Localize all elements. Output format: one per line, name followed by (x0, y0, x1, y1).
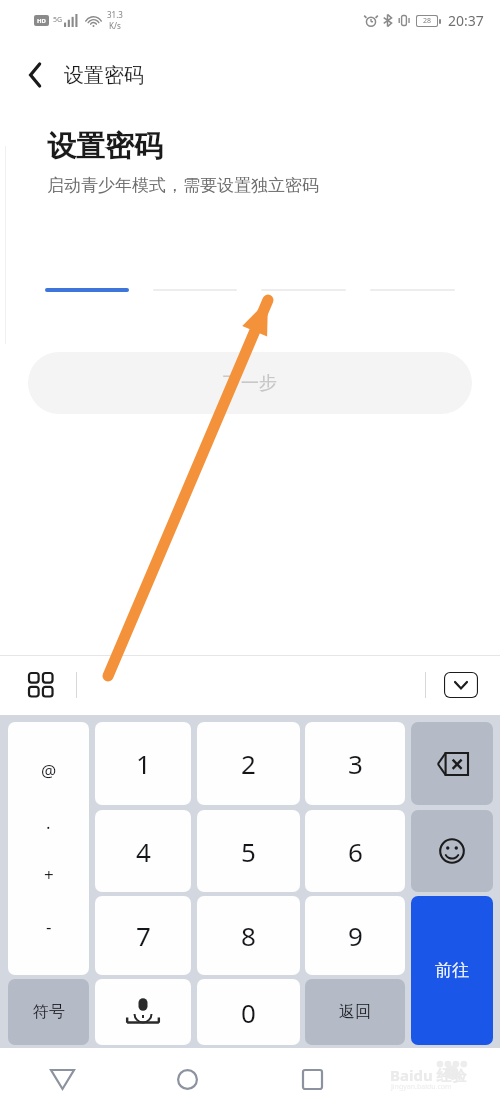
staticText: Baidu 经验 (390, 1065, 467, 1085)
button[interactable]: Home (125, 1048, 250, 1111)
staticText: jingyan.baidu.com (391, 1082, 452, 1092)
button[interactable]: 3 (305, 722, 405, 805)
staticText: 设置密码 (47, 128, 163, 165)
button[interactable] (411, 722, 493, 805)
staticText: 31.3 (107, 9, 123, 20)
button[interactable]: 4 (95, 810, 191, 892)
button[interactable]: 前往 (411, 896, 493, 1045)
staticText: 符号 (33, 1002, 65, 1022)
staticText: 6 (348, 834, 363, 869)
button[interactable]: @ (8, 722, 89, 975)
staticText: HD (37, 17, 46, 25)
staticText: 1 (136, 746, 151, 781)
button[interactable]: 返回 (305, 979, 405, 1045)
staticText: - (46, 915, 52, 938)
button[interactable]: Back (18, 58, 52, 92)
staticText: 28 (423, 16, 432, 26)
button[interactable]: 6 (305, 810, 405, 892)
button[interactable]: 8 (197, 896, 300, 975)
staticText: K/s (109, 20, 121, 31)
button[interactable]: 1 (95, 722, 191, 805)
button[interactable]: Keyboard panels (22, 666, 60, 704)
staticText: 20:37 (448, 11, 484, 30)
button[interactable] (411, 810, 493, 892)
button[interactable]: 符号 (8, 979, 89, 1045)
button[interactable]: 0 (197, 979, 300, 1045)
staticText: 下一步 (223, 372, 277, 395)
staticText: 9 (348, 918, 363, 953)
staticText: 启动青少年模式，需要设置独立密码 (47, 175, 319, 196)
button[interactable] (95, 979, 191, 1045)
button[interactable]: Recents (250, 1048, 375, 1111)
staticText: 返回 (339, 1002, 371, 1022)
staticText: 前往 (435, 960, 469, 981)
staticText: 0 (241, 995, 256, 1030)
staticText: 3 (348, 746, 363, 781)
staticText: @ (41, 759, 57, 782)
button[interactable]: 5 (197, 810, 300, 892)
button[interactable]: 9 (305, 896, 405, 975)
staticText: 5 (241, 834, 256, 869)
staticText: 2 (241, 746, 256, 781)
staticText: + (44, 863, 54, 886)
staticText: 设置密码 (64, 63, 144, 88)
staticText: 7 (136, 918, 151, 953)
button[interactable]: 下一步 (28, 352, 472, 414)
button[interactable]: Back (0, 1048, 125, 1111)
staticText: 5G (53, 15, 63, 25)
staticText: 8 (241, 918, 256, 953)
button[interactable]: 7 (95, 896, 191, 975)
button[interactable]: Hide keyboard (444, 672, 478, 698)
staticText: 4 (136, 834, 151, 869)
button[interactable]: 2 (197, 722, 300, 805)
staticText: . (46, 811, 51, 834)
